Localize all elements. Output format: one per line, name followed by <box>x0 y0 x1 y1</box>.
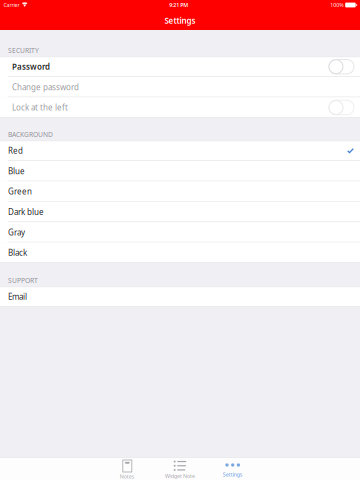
staticText: Green <box>8 186 32 197</box>
staticText: Lock at the left <box>12 102 68 113</box>
button[interactable]: Settings <box>206 457 259 480</box>
staticText: Settings <box>164 15 195 26</box>
button[interactable]: Widget Note <box>154 457 206 480</box>
staticText: Notes <box>120 473 135 480</box>
button[interactable]: Gray <box>0 222 360 242</box>
button[interactable]: Dark blue <box>0 202 360 222</box>
staticText: 9:21 PM <box>169 1 188 9</box>
button[interactable]: Password <box>0 56 360 77</box>
button[interactable]: Change password <box>0 77 360 97</box>
button[interactable]: Email <box>0 286 360 307</box>
staticText: Gray <box>8 227 25 238</box>
button[interactable]: Black <box>0 242 360 263</box>
staticText: Widget Note <box>165 472 195 480</box>
button[interactable]: Notes <box>101 457 154 480</box>
staticText: Change password <box>12 82 79 92</box>
staticText: Black <box>8 247 27 258</box>
button[interactable]: Lock at the left <box>0 97 360 118</box>
staticText: Dark blue <box>8 207 44 217</box>
staticText: Email <box>8 291 27 302</box>
staticText: 100% <box>330 1 343 9</box>
staticText: BACKGROUND <box>8 130 53 139</box>
staticText: Password <box>12 61 50 72</box>
button[interactable]: Green <box>0 181 360 202</box>
staticText: Red <box>8 145 23 156</box>
staticText: Settings <box>223 471 243 478</box>
staticText: Carrier <box>3 1 19 9</box>
staticText: SECURITY <box>8 46 39 55</box>
button[interactable]: Red <box>0 140 360 161</box>
staticText: SUPPORT <box>8 276 38 285</box>
staticText: Blue <box>8 166 25 176</box>
button[interactable]: Blue <box>0 161 360 181</box>
